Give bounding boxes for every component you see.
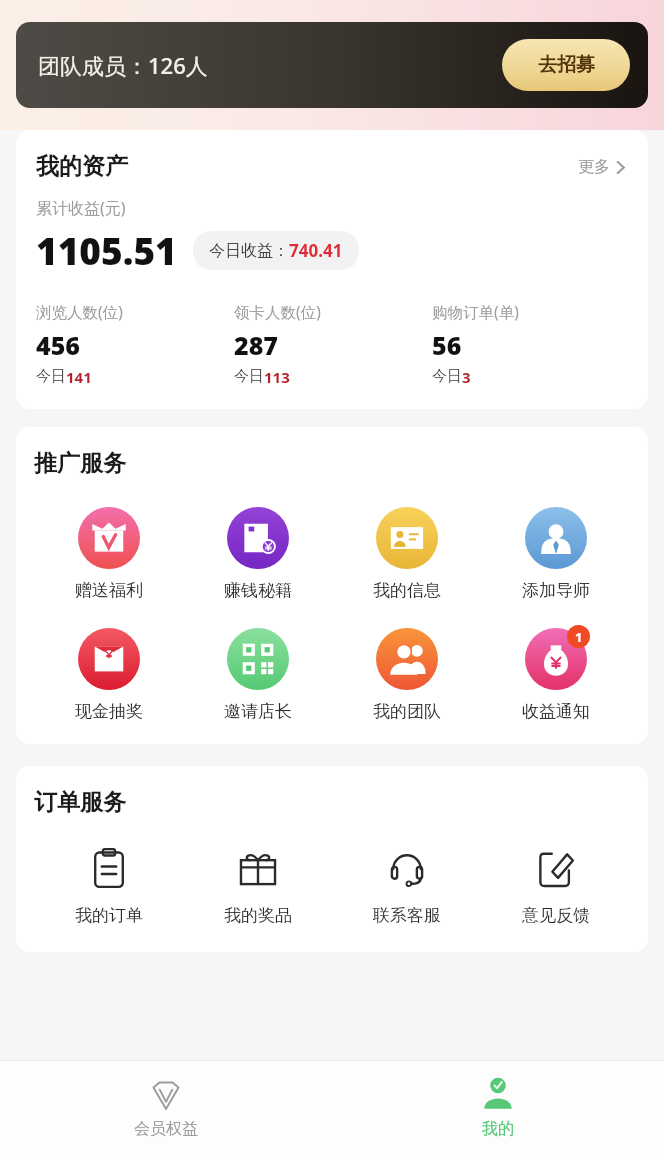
staticText: 141	[66, 367, 92, 387]
staticText: 现金抽奖	[75, 701, 143, 722]
staticText: 添加导师	[522, 580, 590, 601]
button[interactable]: 我的	[332, 1061, 664, 1153]
button[interactable]: 现金抽奖	[34, 623, 183, 724]
staticText: 赚钱秘籍	[224, 580, 292, 601]
staticText: 更多	[578, 157, 610, 177]
staticText: 浏览人数(位)	[36, 301, 123, 322]
staticText: 我的	[482, 1119, 514, 1139]
staticText: 意见反馈	[522, 905, 590, 926]
staticText: 联系客服	[373, 905, 441, 926]
button[interactable]: 邀请店长	[183, 623, 332, 724]
staticText: 740.41	[289, 239, 343, 262]
staticText: 我的奖品	[224, 905, 292, 926]
staticText: 113	[264, 367, 290, 387]
staticText: 我的信息	[373, 580, 441, 601]
button[interactable]: 1	[481, 623, 630, 724]
staticText: 赠送福利	[75, 580, 143, 601]
staticText: 收益通知	[522, 701, 590, 722]
button[interactable]: 我的信息	[332, 502, 481, 603]
staticText: 去招募	[538, 53, 595, 77]
staticText: 我的团队	[373, 701, 441, 722]
button[interactable]: 团队成员：126人	[16, 22, 648, 108]
staticText: 订单服务	[34, 788, 126, 817]
staticText: 287	[234, 328, 278, 362]
button[interactable]: 添加导师	[481, 502, 630, 603]
staticText: 1	[575, 628, 583, 646]
staticText: 456	[36, 328, 80, 362]
staticText: 今日	[432, 367, 462, 386]
button[interactable]: 会员权益	[0, 1061, 332, 1153]
staticText: 1105.51	[36, 225, 177, 275]
staticText: 累计收益(元)	[36, 197, 126, 219]
staticText: 推广服务	[34, 449, 126, 478]
staticText: 会员权益	[134, 1119, 198, 1139]
staticText: 3	[462, 367, 471, 387]
button[interactable]: 更多	[574, 153, 630, 181]
staticText: 今日收益：	[209, 241, 289, 261]
button[interactable]: 联系客服	[332, 845, 481, 926]
staticText: 领卡人数(位)	[234, 301, 321, 322]
button[interactable]: 我的团队	[332, 623, 481, 724]
staticText: 购物订单(单)	[432, 301, 519, 322]
button[interactable]: 我的订单	[34, 845, 183, 926]
staticText: 我的资产	[36, 152, 128, 181]
staticText: 56	[432, 328, 462, 362]
staticText: 今日	[234, 367, 264, 386]
button[interactable]: 意见反馈	[481, 845, 630, 926]
button[interactable]: 去招募	[502, 39, 630, 91]
staticText: 我的订单	[75, 905, 143, 926]
button[interactable]: 我的奖品	[183, 845, 332, 926]
staticText: 团队成员：126人	[38, 50, 208, 80]
staticText: 今日	[36, 367, 66, 386]
staticText: 邀请店长	[224, 701, 292, 722]
button[interactable]: 赚钱秘籍	[183, 502, 332, 603]
button[interactable]: 赠送福利	[34, 502, 183, 603]
